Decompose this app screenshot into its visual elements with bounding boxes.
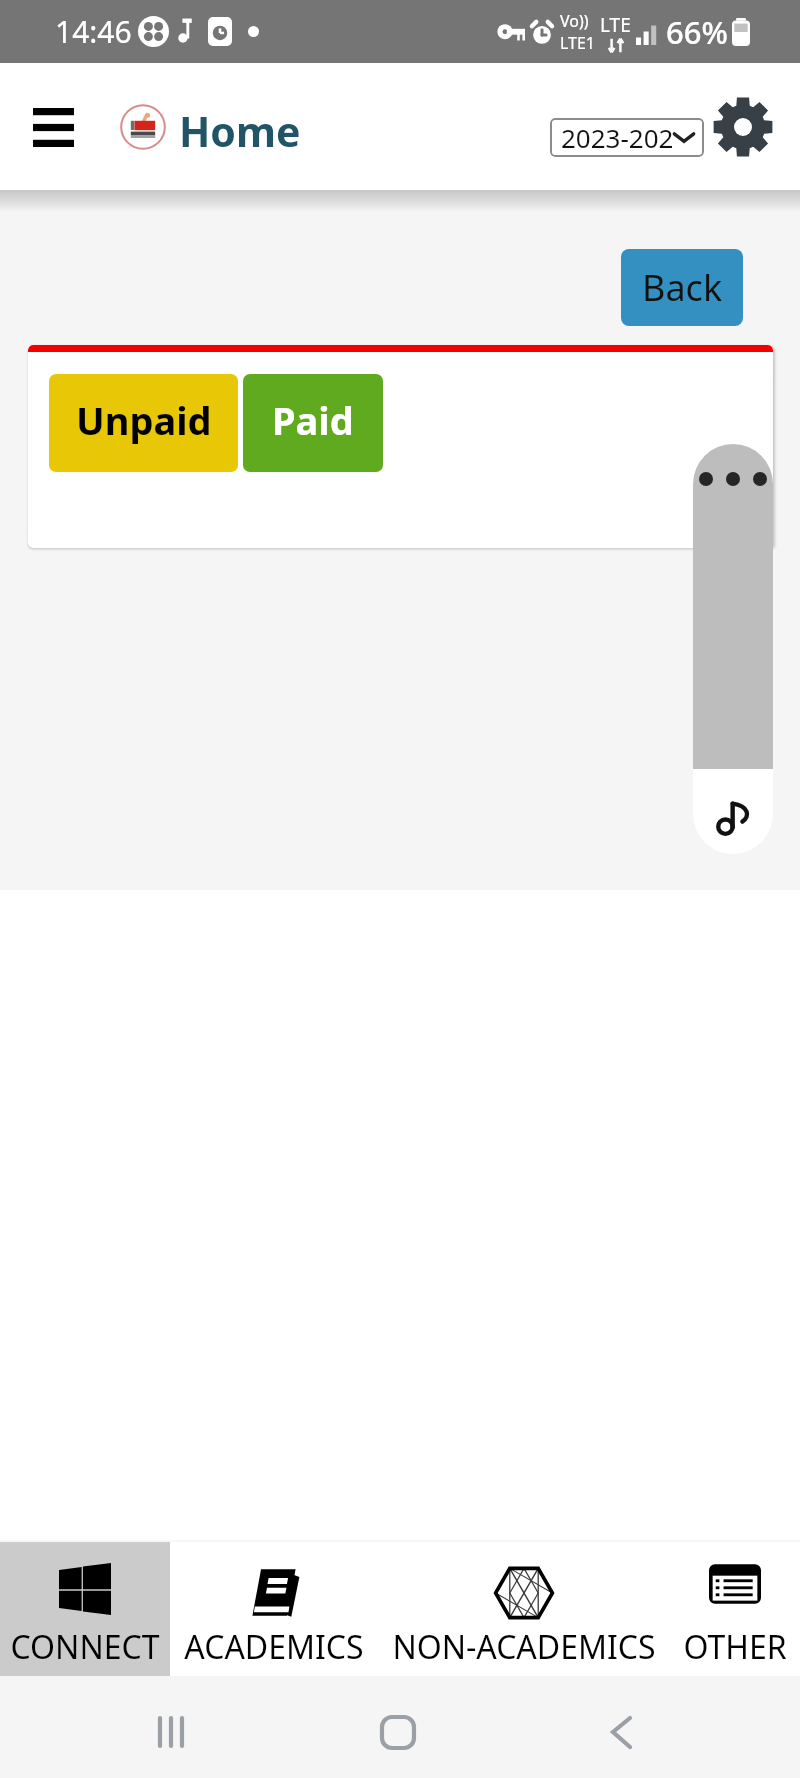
staticText: 66% <box>666 11 728 53</box>
staticText: Paid <box>272 394 354 446</box>
button[interactable]: Unpaid <box>49 374 238 472</box>
staticText: CONNECT <box>10 1625 160 1669</box>
staticText: Home <box>179 103 301 159</box>
button[interactable]: 2023-2024 <box>550 118 704 157</box>
button[interactable]: Home <box>378 1713 418 1753</box>
staticText: ACADEMICS <box>184 1625 364 1669</box>
staticText: LTE1 <box>560 32 596 54</box>
staticText: 14:46 <box>55 11 132 52</box>
button[interactable]: Edge panel <box>693 444 773 854</box>
staticText: LTE <box>600 12 631 38</box>
button[interactable]: OTHER <box>670 1542 800 1679</box>
button[interactable]: Menu <box>24 98 82 156</box>
button[interactable]: Recents <box>152 1710 196 1754</box>
button[interactable]: CONNECT <box>0 1542 170 1679</box>
button[interactable]: Settings <box>712 96 774 158</box>
staticText: 2023-2024 <box>561 120 674 155</box>
button[interactable]: Paid <box>243 374 383 472</box>
button[interactable]: Back <box>606 1712 640 1746</box>
staticText: Unpaid <box>76 394 212 446</box>
button[interactable]: ACADEMICS <box>170 1542 378 1679</box>
staticText: NON-ACADEMICS <box>392 1625 656 1669</box>
button[interactable]: NON-ACADEMICS <box>378 1542 670 1679</box>
staticText: OTHER <box>683 1625 787 1669</box>
button[interactable]: Back <box>621 249 743 326</box>
staticText: Back <box>642 263 723 312</box>
staticText: Vo)) <box>560 10 589 32</box>
